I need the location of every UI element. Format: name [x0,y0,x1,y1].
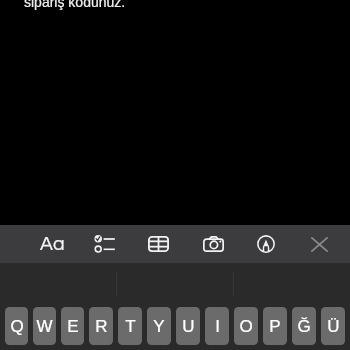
button[interactable]: Checklist [79,225,129,263]
staticText: E [67,317,79,336]
button[interactable]: R [89,307,113,345]
button[interactable]: Table [133,225,183,263]
staticText: Y [153,317,165,336]
staticText: P [269,317,281,336]
button[interactable]: Q [5,307,28,345]
button[interactable]: T [118,307,142,345]
button[interactable]: O [234,307,258,345]
staticText: T [125,317,136,336]
button[interactable]: P [263,307,287,345]
button[interactable]: I [205,307,229,345]
button[interactable]: Ü [321,307,345,345]
staticText: W [36,317,53,336]
staticText: R [95,317,108,336]
staticText: O [239,317,253,336]
button[interactable]: Ğ [292,307,316,345]
button[interactable]: Hide keyboard [294,225,344,263]
button[interactable]: E [61,307,84,345]
button[interactable]: Markup [241,225,291,263]
button[interactable]: W [33,307,56,345]
button[interactable]: U [176,307,200,345]
staticText: I [215,317,220,336]
button[interactable]: Text formatting [27,225,77,263]
staticText: Ğ [297,317,311,336]
button[interactable]: Camera [188,225,238,263]
staticText: Aa [40,234,65,254]
staticText: U [182,317,195,336]
staticText: Q [10,317,24,336]
staticText: Ü [327,317,340,336]
staticText: sipariş kodunuz. [24,0,126,10]
button[interactable]: Y [147,307,171,345]
